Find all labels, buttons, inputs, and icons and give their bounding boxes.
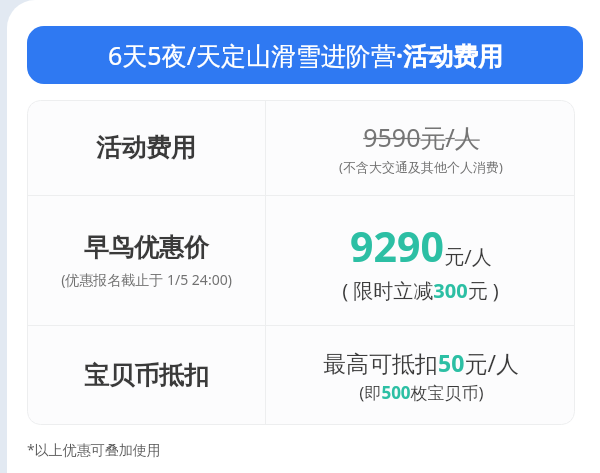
- staticText: 早鸟优惠价: [84, 232, 209, 263]
- staticText: (即500枚宝贝币): [359, 381, 484, 404]
- staticText: 元/人: [444, 243, 492, 270]
- staticText: 最高可抵扣50元/人: [323, 347, 519, 378]
- button[interactable]: 9290: [266, 196, 575, 325]
- staticText: 活动费用: [96, 132, 196, 163]
- button[interactable]: 活动费用: [27, 100, 265, 195]
- button[interactable]: 宝贝币抵扣: [27, 326, 265, 425]
- staticText: 9290: [350, 218, 444, 274]
- staticText: 9590元/人: [363, 120, 480, 154]
- staticText: 6天5夜/天定山滑雪进阶营·活动费用: [108, 38, 503, 72]
- staticText: 宝贝币抵扣: [84, 360, 209, 391]
- button[interactable]: 9590元/人: [266, 100, 575, 195]
- button[interactable]: 早鸟优惠价: [27, 196, 265, 325]
- staticText: ( 限时立减300元 ): [342, 277, 499, 304]
- button[interactable]: 6天5夜/天定山滑雪进阶营·活动费用: [27, 26, 583, 84]
- staticText: (优惠报名截止于 1/5 24:00): [61, 270, 232, 289]
- button[interactable]: 最高可抵扣50元/人: [266, 326, 575, 425]
- staticText: *以上优惠可叠加使用: [27, 440, 161, 459]
- staticText: (不含大交通及其他个人消费): [339, 158, 503, 176]
